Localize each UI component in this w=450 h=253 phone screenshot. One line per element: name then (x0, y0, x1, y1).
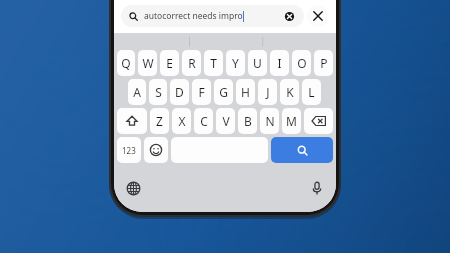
button[interactable]: M (282, 108, 301, 134)
button[interactable]: B (238, 108, 257, 134)
staticText: P (320, 55, 328, 71)
staticText: C (200, 113, 208, 129)
staticText: X (178, 113, 186, 129)
staticText: 123 (122, 145, 136, 156)
staticText: J (266, 84, 270, 100)
button[interactable]: Close search (307, 5, 329, 27)
button[interactable]: Change keyboard language (123, 178, 143, 198)
button[interactable]: T (204, 50, 223, 76)
staticText: L (308, 84, 315, 100)
button[interactable]: Emoji (144, 137, 168, 163)
button[interactable]: Backspace (304, 108, 333, 134)
button[interactable]: Z (150, 108, 169, 134)
button[interactable]: H (236, 79, 255, 105)
staticText: W (142, 55, 154, 71)
staticText: autocorrect needs impro (144, 10, 243, 22)
staticText: U (253, 55, 262, 71)
staticText: T (210, 55, 217, 71)
staticText: I (277, 55, 282, 71)
button[interactable]: D (170, 79, 189, 105)
button[interactable]: C (194, 108, 213, 134)
button[interactable]: J (258, 79, 277, 105)
button[interactable]: E (160, 50, 179, 76)
button[interactable]: P (314, 50, 333, 76)
button[interactable]: A (128, 79, 146, 105)
button[interactable]: L (302, 79, 321, 105)
button[interactable]: G (214, 79, 233, 105)
staticText: O (297, 55, 307, 71)
staticText: S (155, 84, 162, 100)
staticText: Y (232, 55, 239, 71)
button[interactable]: X (172, 108, 191, 134)
staticText: M (286, 113, 297, 129)
button[interactable]: F (192, 79, 211, 105)
staticText: K (286, 84, 294, 100)
button[interactable]: V (216, 108, 235, 134)
staticText: E (166, 55, 173, 71)
button[interactable]: N (260, 108, 279, 134)
staticText: G (219, 84, 228, 100)
staticText: R (188, 55, 196, 71)
button[interactable]: W (138, 50, 157, 76)
button[interactable]: Voice input (307, 178, 327, 198)
button[interactable]: S (149, 79, 167, 105)
staticText: Q (121, 55, 131, 71)
staticText: A (133, 84, 141, 100)
button[interactable]: 123 (117, 137, 141, 163)
button[interactable]: Shift (117, 108, 147, 134)
staticText: D (175, 84, 184, 100)
button[interactable]: I (270, 50, 289, 76)
staticText: V (222, 113, 230, 129)
button[interactable]: O (292, 50, 311, 76)
button[interactable]: autocorrect needs impro (121, 5, 304, 27)
button[interactable]: Clear text (281, 8, 297, 24)
button[interactable]: K (280, 79, 299, 105)
staticText: F (198, 84, 205, 100)
button[interactable]: Q (117, 50, 135, 76)
button[interactable]: Space (171, 137, 268, 163)
button[interactable]: R (182, 50, 201, 76)
button[interactable]: Y (226, 50, 245, 76)
button[interactable]: U (248, 50, 267, 76)
staticText: N (265, 113, 275, 129)
staticText: Z (156, 113, 163, 129)
button[interactable]: Search (271, 137, 333, 163)
staticText: B (244, 113, 252, 129)
staticText: H (241, 84, 250, 100)
